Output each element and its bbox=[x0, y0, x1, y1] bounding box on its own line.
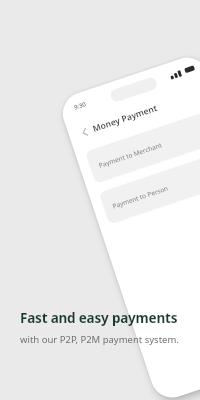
staticText: Payment to Merchant bbox=[97, 140, 163, 170]
staticText: with our P2P, P2M payment system. bbox=[20, 333, 179, 346]
staticText: Money Payment bbox=[91, 102, 159, 135]
button[interactable]: Payment to Person bbox=[98, 151, 200, 225]
button[interactable]: Back bbox=[76, 123, 93, 141]
staticText: Fast and easy payments bbox=[20, 309, 178, 327]
button[interactable]: Payment to Merchant bbox=[85, 110, 200, 184]
staticText: Payment to Person bbox=[111, 183, 170, 211]
staticText: 9:30 bbox=[73, 100, 87, 112]
button[interactable]: Continue bbox=[0, 0, 200, 400]
